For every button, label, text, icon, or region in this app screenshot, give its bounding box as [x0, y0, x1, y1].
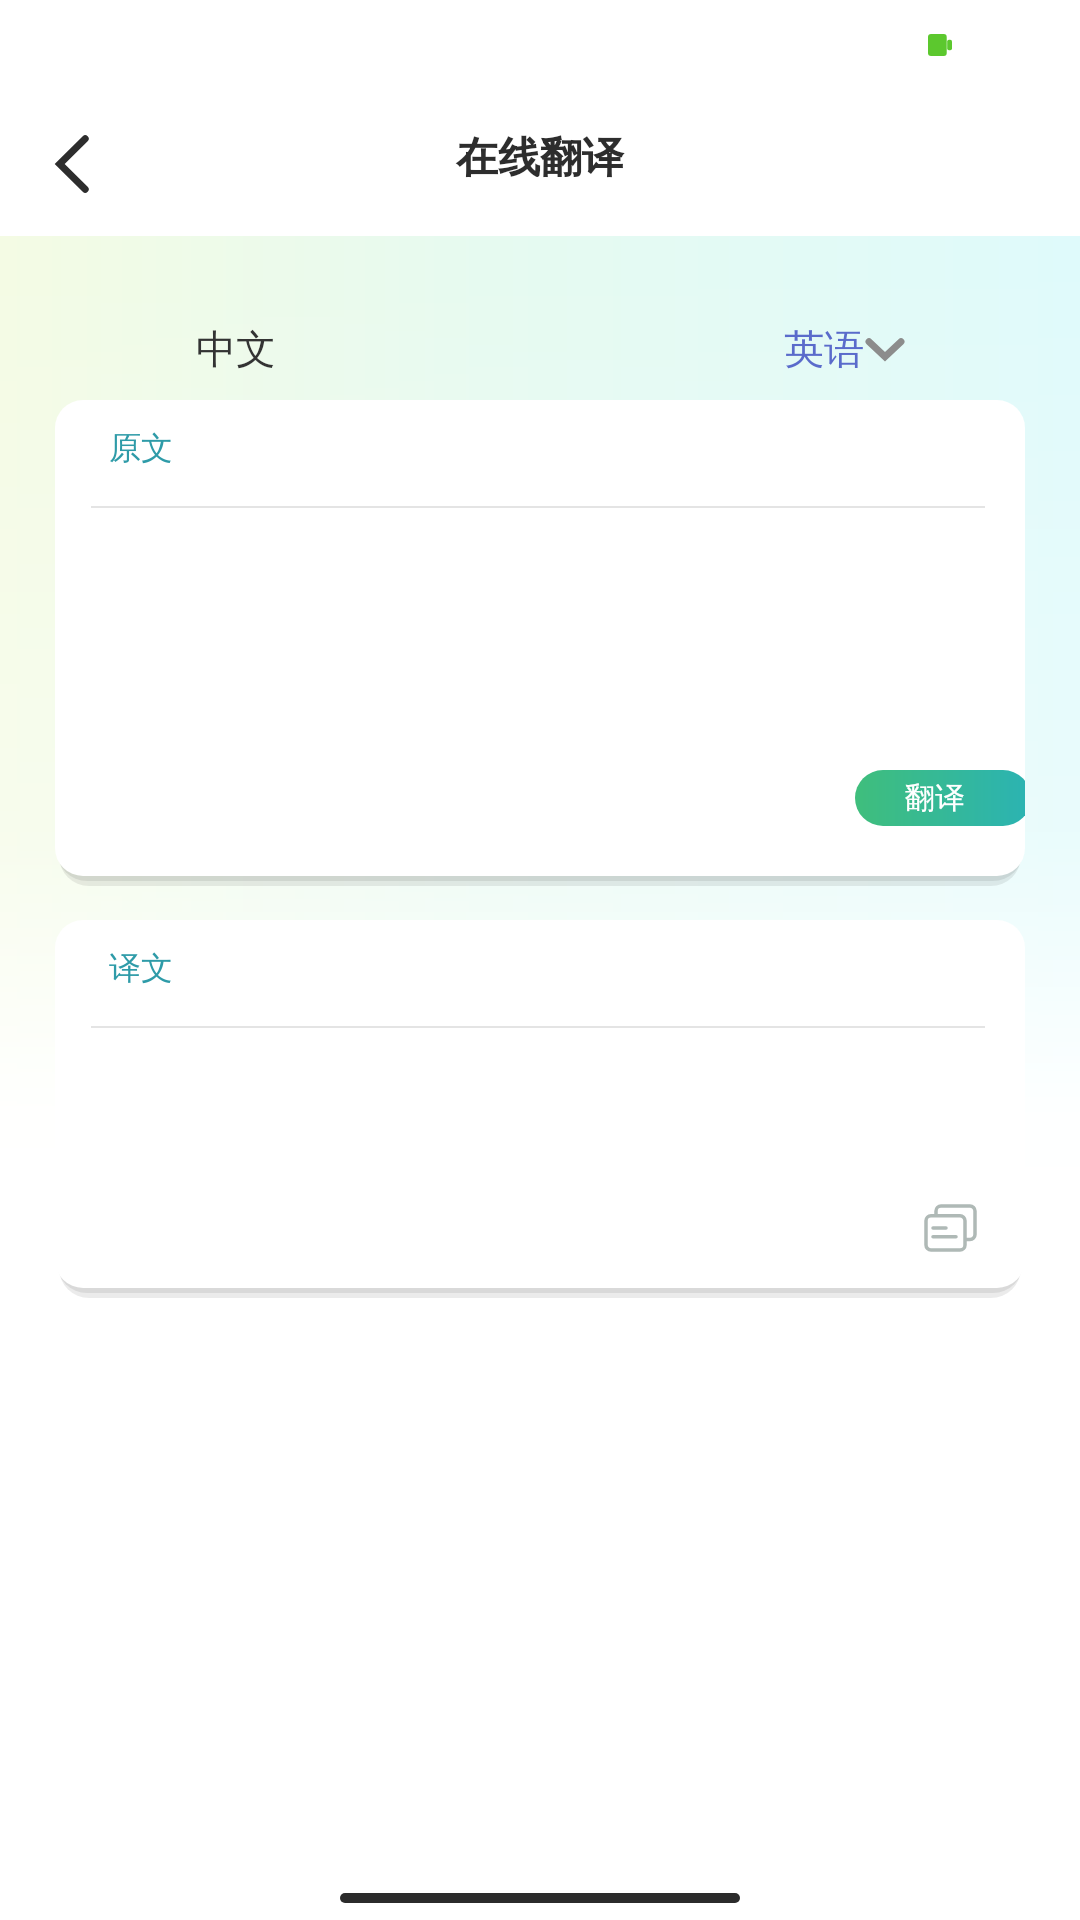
staticText: 翻译 [905, 779, 965, 817]
button[interactable]: Back [12, 104, 132, 224]
button[interactable]: 原文 [55, 400, 1025, 876]
button[interactable]: 翻译 [855, 770, 1025, 826]
button[interactable]: 中文 [170, 310, 302, 388]
staticText: 译文 [109, 948, 173, 988]
button[interactable]: 英语 [768, 310, 920, 388]
staticText: 原文 [109, 428, 173, 468]
staticText: 英语 [784, 324, 864, 374]
button[interactable]: Copy [913, 1190, 989, 1266]
staticText: 在线翻译 [0, 132, 1080, 185]
button[interactable]: 译文 [55, 920, 1025, 1288]
staticText: 中文 [196, 324, 276, 374]
